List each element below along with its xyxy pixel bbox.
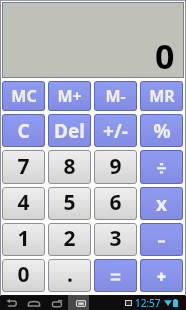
staticText: Del	[54, 118, 85, 144]
button[interactable]: Minus	[140, 223, 183, 256]
button[interactable]: Equals	[94, 259, 137, 292]
button[interactable]: 1	[2, 223, 45, 256]
button[interactable]: .	[48, 259, 91, 292]
button[interactable]: M+	[48, 81, 91, 111]
staticText: %	[153, 118, 171, 144]
button[interactable]: C	[2, 114, 45, 147]
staticText: +/-	[103, 118, 128, 144]
staticText: 12:57	[135, 296, 161, 310]
staticText: MR	[149, 85, 175, 107]
button[interactable]: MC	[2, 81, 45, 111]
staticText: 3	[109, 224, 122, 253]
staticText: 0	[17, 260, 30, 289]
staticText: 0	[155, 33, 175, 79]
button[interactable]: MR	[140, 81, 183, 111]
staticText: 9	[109, 152, 122, 181]
button[interactable]: 2	[48, 223, 91, 256]
staticText: x	[156, 191, 167, 217]
button[interactable]: 7	[2, 150, 45, 184]
staticText: 5	[63, 188, 76, 217]
staticText: 7	[17, 152, 30, 181]
button[interactable]: Back	[2, 295, 22, 310]
staticText: .	[67, 260, 73, 289]
button[interactable]: 0	[2, 259, 45, 292]
button[interactable]: Home	[24, 295, 44, 310]
button[interactable]: 5	[48, 187, 91, 220]
button[interactable]: 8	[48, 150, 91, 184]
button[interactable]: Recent apps	[46, 295, 66, 310]
button[interactable]: x	[140, 187, 183, 220]
button[interactable]: 6	[94, 187, 137, 220]
button[interactable]: Plus	[140, 259, 183, 292]
staticText: M+	[57, 85, 82, 107]
staticText: 2	[63, 224, 76, 253]
staticText: 1	[17, 224, 30, 253]
staticText: 4	[17, 188, 30, 217]
button[interactable]: Divide	[140, 150, 183, 184]
button[interactable]: Del	[48, 114, 91, 147]
button[interactable]: 3	[94, 223, 137, 256]
staticText: MC	[11, 85, 37, 107]
staticText: 8	[63, 152, 76, 181]
button[interactable]: %	[140, 114, 183, 147]
button[interactable]: Screenshot	[68, 295, 89, 310]
button[interactable]: M-	[94, 81, 137, 111]
staticText: 6	[109, 188, 122, 217]
staticText: M-	[105, 85, 126, 107]
staticText: C	[17, 118, 30, 144]
button[interactable]: 9	[94, 150, 137, 184]
button[interactable]: +/-	[94, 114, 137, 147]
button[interactable]: 4	[2, 187, 45, 220]
